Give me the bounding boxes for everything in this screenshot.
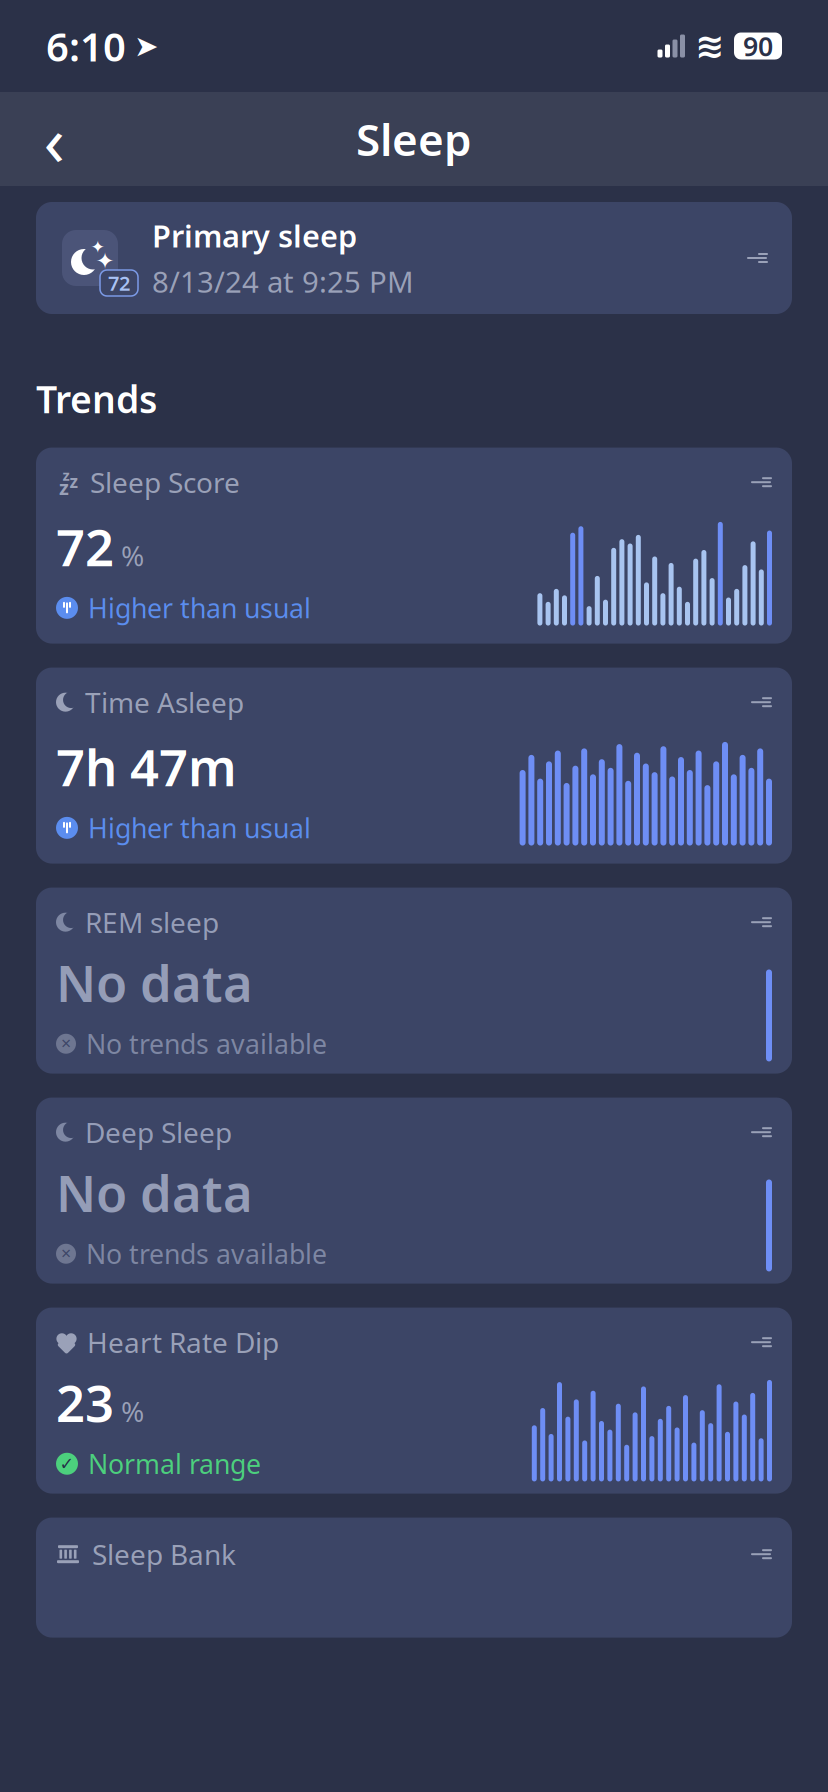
button[interactable]: Heart Rate Dip [36, 1308, 792, 1494]
staticText: 23 [56, 1369, 114, 1436]
staticText: Sleep Bank [92, 1536, 236, 1573]
staticText: ✕ [60, 1246, 71, 1261]
staticText: No trends available [86, 1026, 327, 1061]
staticText: ✦ [90, 237, 105, 257]
staticText: 72 [108, 270, 130, 296]
button[interactable]: Time Asleep [36, 668, 792, 864]
staticText: % [121, 537, 144, 574]
staticText: 8/13/24 at 9:25 PM [152, 262, 414, 301]
staticText: ✕ [60, 1036, 71, 1051]
staticText: No trends available [86, 1236, 327, 1271]
staticText: No data [56, 949, 253, 1016]
button[interactable]: ✦ [36, 202, 792, 314]
staticText: Normal range [88, 1446, 261, 1481]
staticText: Trends [36, 374, 157, 424]
staticText: Sleep [356, 110, 472, 168]
button[interactable]: Sleep Bank [36, 1518, 792, 1638]
staticText: z [69, 470, 78, 493]
staticText: 7h 47m [56, 733, 237, 800]
staticText: Heart Rate Dip [87, 1324, 279, 1361]
staticText: 90 [743, 28, 773, 64]
button[interactable]: Back [24, 109, 84, 169]
staticText: Sleep Score [90, 464, 240, 501]
staticText: ≋ [695, 26, 724, 66]
button[interactable]: REM sleep [36, 888, 792, 1074]
staticText: 6:10 [46, 19, 126, 72]
staticText: REM sleep [85, 904, 219, 941]
staticText: % [121, 1393, 144, 1430]
staticText: 72 [56, 513, 114, 580]
staticText: Higher than usual [88, 810, 311, 846]
staticText: Higher than usual [88, 590, 311, 626]
staticText: No data [56, 1159, 253, 1226]
button[interactable]: z [36, 448, 792, 644]
staticText: Primary sleep [152, 215, 357, 256]
button[interactable]: Deep Sleep [36, 1098, 792, 1284]
staticText: Deep Sleep [85, 1114, 232, 1151]
staticText: ‹ [43, 93, 64, 185]
staticText: ✓ [59, 1454, 74, 1474]
staticText: z [59, 474, 69, 500]
staticText: z [62, 465, 69, 485]
staticText: ✦ [95, 248, 114, 274]
staticText: ➤ [134, 29, 159, 63]
staticText: Time Asleep [85, 684, 244, 721]
